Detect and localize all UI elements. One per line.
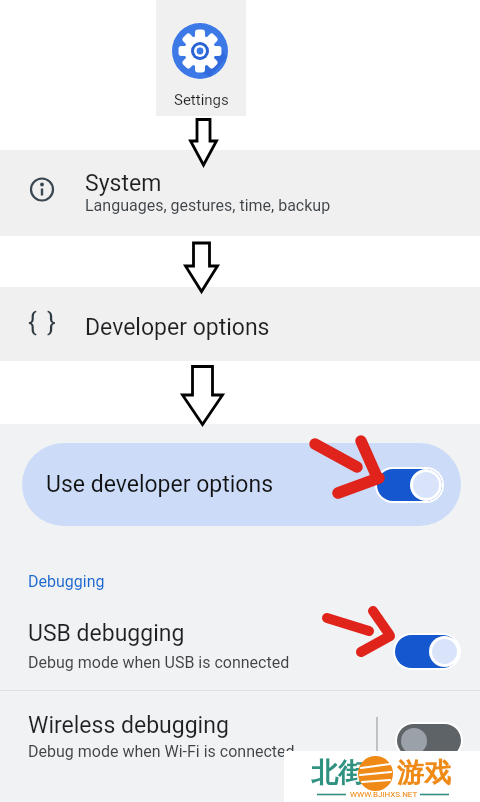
button[interactable]: 北街 [284,751,480,802]
button[interactable] [156,0,246,116]
staticText: Settings [174,91,229,109]
button[interactable] [395,635,459,668]
button[interactable]: { [0,287,480,361]
staticText: { [28,307,37,337]
staticText: System [85,170,162,197]
staticText: Debug mode when USB is connected [28,653,290,672]
staticText: Wireless debugging [28,712,229,739]
staticText: Languages, gestures, time, backup [85,196,331,215]
staticText: WWW.BJIHXS.NET [350,790,418,799]
button[interactable]: Use developer options [22,443,461,526]
staticText: 游戏 [397,756,451,790]
button[interactable]: System [0,150,480,236]
button[interactable] [377,469,442,501]
staticText: Use developer options [46,471,274,498]
button[interactable] [0,612,480,684]
button[interactable] [0,703,480,767]
staticText: Debugging [28,572,105,591]
staticText: Developer options [85,314,270,341]
button[interactable] [397,724,461,757]
staticText: 北街 [311,756,365,790]
staticText: USB debugging [28,620,185,647]
staticText: } [47,307,56,337]
staticText: Debug mode when Wi-Fi is connected [28,742,295,761]
